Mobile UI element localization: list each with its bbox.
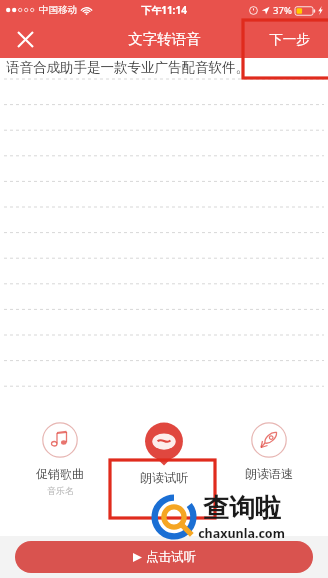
staticText: 朗读语速 [245, 466, 293, 481]
staticText: 下午11:14 [141, 3, 187, 17]
staticText: 中国移动 [39, 4, 77, 16]
staticText: 促销歌曲 [36, 466, 84, 481]
button[interactable]: 下一步 [265, 27, 314, 52]
staticText: chaxunla.com [198, 525, 285, 542]
staticText: 下一步 [269, 31, 310, 48]
staticText: 语音合成助手是一款专业广告配音软件。 [6, 59, 249, 76]
button[interactable]: 朗读试听 [119, 422, 209, 485]
button[interactable]: 点击试听 [15, 541, 313, 573]
button[interactable]: 朗读语速 [224, 422, 314, 481]
staticText: 37% [273, 4, 292, 17]
button[interactable]: Close [10, 24, 40, 54]
staticText: 音乐名 [47, 485, 74, 496]
staticText: 文字转语音 [128, 30, 201, 48]
button[interactable]: 促销歌曲 [15, 422, 105, 496]
staticText: 点击试听 [146, 549, 196, 565]
staticText: 查询啦 [203, 492, 281, 525]
staticText: 朗读试听 [140, 470, 188, 485]
